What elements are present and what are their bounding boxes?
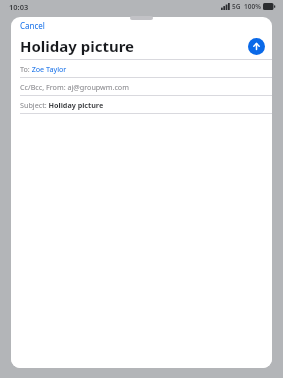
button[interactable]: Subject: Holiday picture — [11, 96, 272, 113]
staticText: 10:03 — [9, 2, 29, 12]
staticText: Cc/Bcc, From: aj@groupwm.com — [20, 82, 129, 92]
button[interactable]: Send — [248, 38, 265, 55]
button[interactable]: Cc/Bcc, From: aj@groupwm.com — [11, 78, 272, 95]
staticText: 100% — [244, 2, 261, 11]
staticText: Holiday picture — [20, 36, 248, 56]
staticText: To: Zoe Taylor — [20, 64, 67, 74]
staticText: Cancel — [20, 20, 45, 31]
button[interactable]: Cancel — [18, 18, 47, 33]
button[interactable]: To: Zoe Taylor — [11, 60, 272, 77]
staticText: Subject: Holiday picture — [20, 100, 104, 110]
staticText: 5G — [232, 2, 241, 11]
